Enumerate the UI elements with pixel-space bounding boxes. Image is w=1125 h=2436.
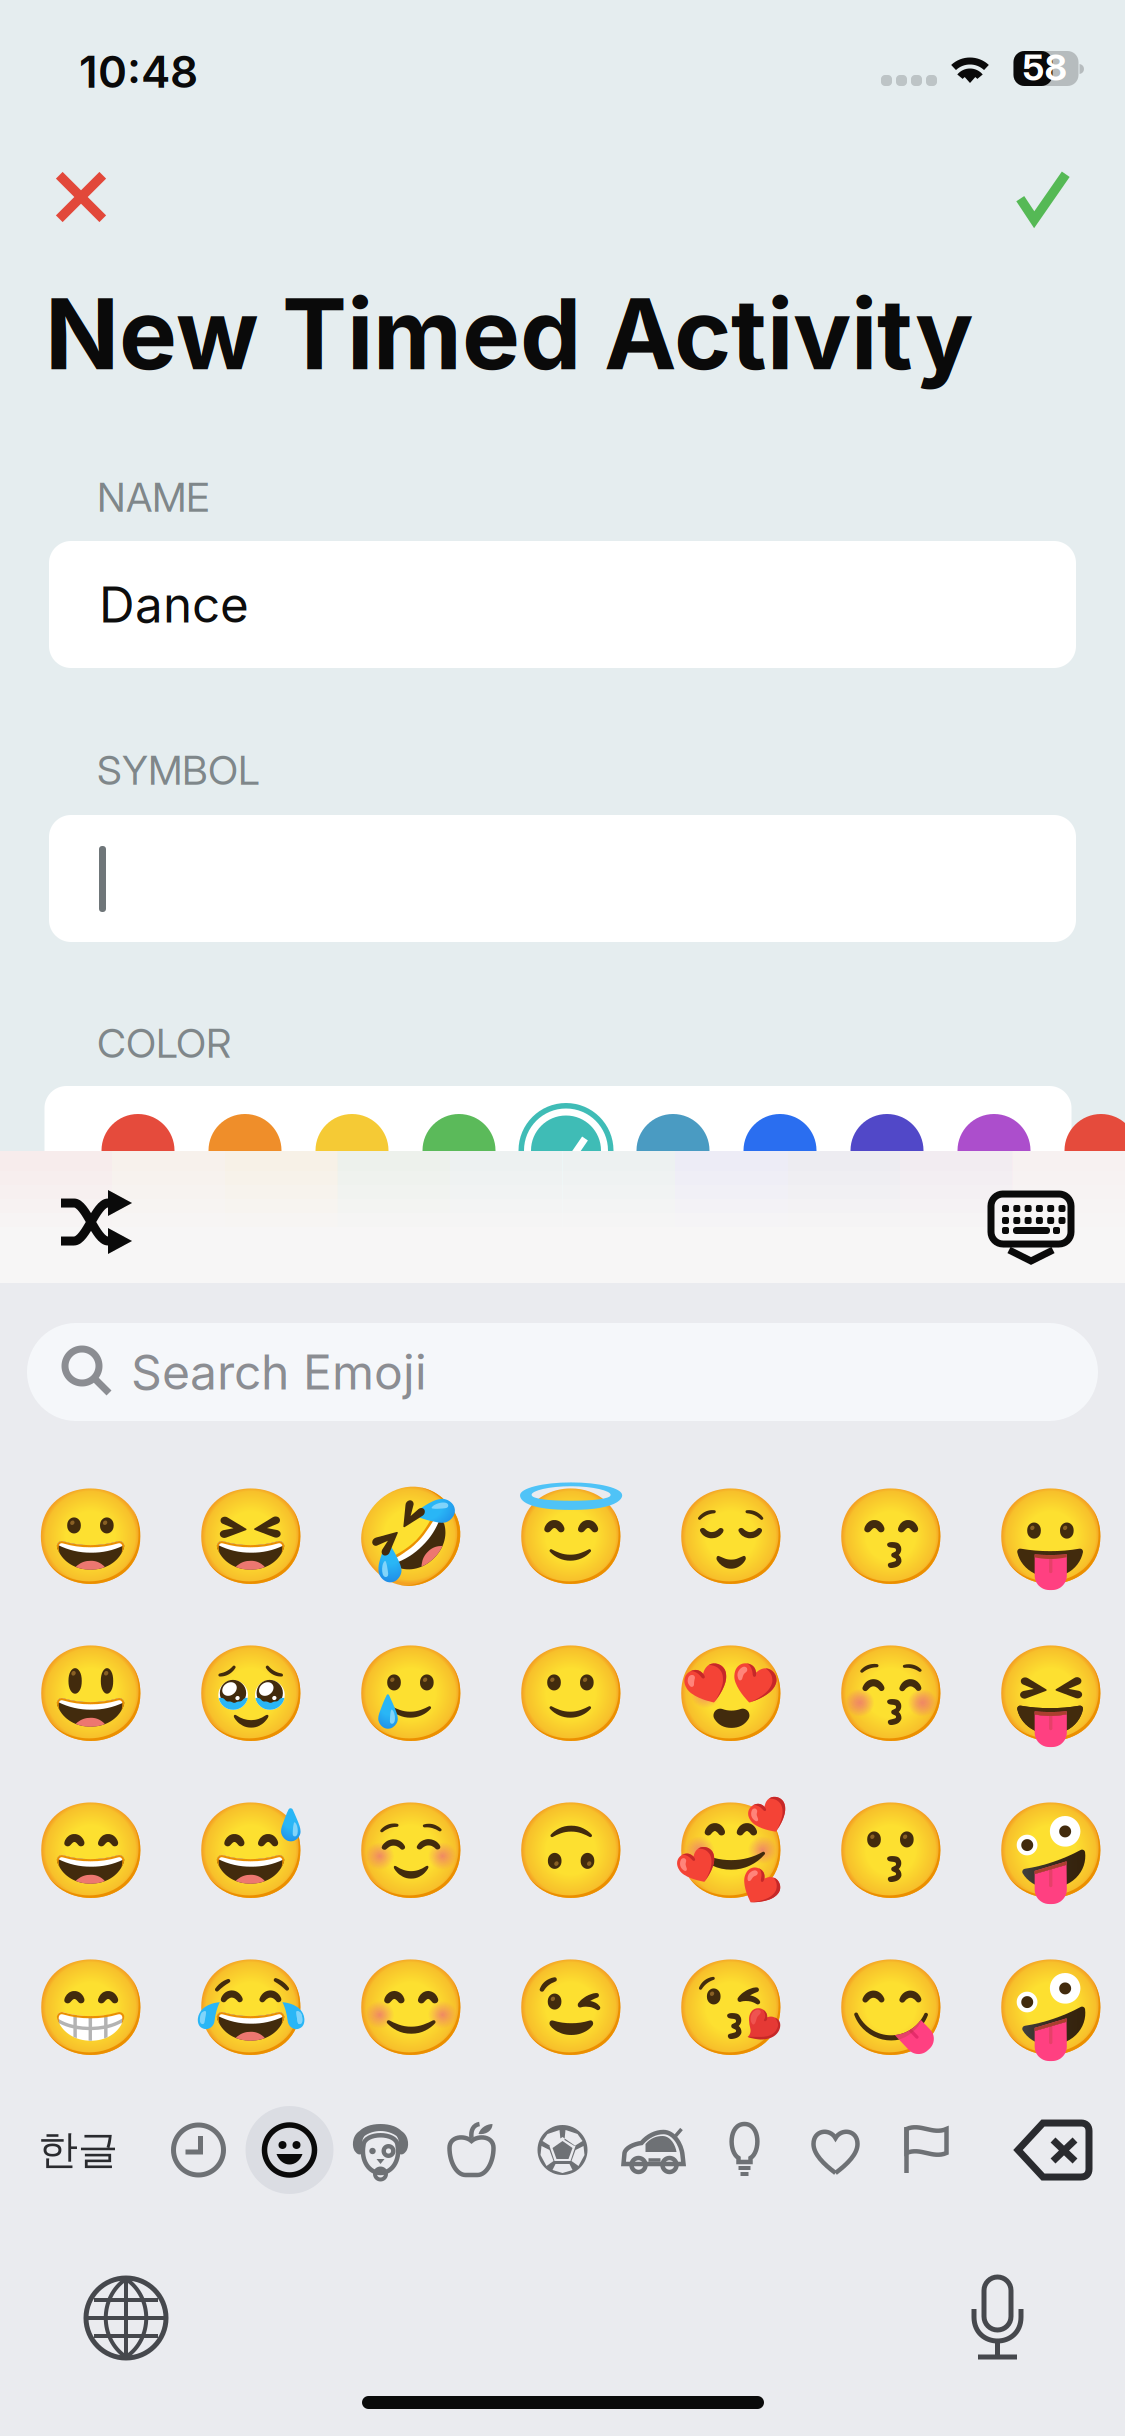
- staticText: 🤪: [993, 1953, 1109, 2063]
- staticText: 😌: [673, 1482, 789, 1592]
- button[interactable]: Smileys and people: [244, 2095, 335, 2205]
- button[interactable]: Dictation: [928, 2248, 1068, 2388]
- button[interactable]: 🥰: [681, 1801, 781, 1901]
- button[interactable]: Indigo: [850, 1114, 923, 1187]
- staticText: 😄: [33, 1796, 149, 1906]
- button[interactable]: 🥹: [201, 1644, 301, 1744]
- button[interactable]: Red: [1064, 1114, 1125, 1187]
- button[interactable]: Red: [101, 1114, 174, 1187]
- staticText: 😋: [833, 1953, 949, 2063]
- button[interactable]: Green: [422, 1114, 495, 1187]
- button[interactable]: Food and drink: [426, 2095, 517, 2205]
- staticText: 🤪: [993, 1796, 1109, 1906]
- button[interactable]: Teal: [529, 1114, 602, 1187]
- button[interactable]: 😗: [841, 1801, 941, 1901]
- staticText: 😀: [33, 1482, 149, 1592]
- staticText: 😗: [833, 1796, 949, 1906]
- button[interactable]: 😊: [361, 1958, 461, 2058]
- button[interactable]: 🤪: [1001, 1958, 1101, 2058]
- staticText: 😇: [513, 1482, 629, 1592]
- button[interactable]: Objects: [699, 2095, 790, 2205]
- button[interactable]: Yellow: [315, 1114, 388, 1187]
- button[interactable]: 😀: [41, 1487, 141, 1587]
- staticText: 😉: [513, 1953, 629, 2063]
- staticText: COLOR: [97, 1019, 231, 1067]
- staticText: SYMBOL: [97, 746, 260, 794]
- button[interactable]: 😇: [521, 1487, 621, 1587]
- button[interactable]: Steel Blue: [636, 1114, 709, 1187]
- button[interactable]: Orange: [208, 1114, 281, 1187]
- button[interactable]: 😉: [521, 1958, 621, 2058]
- button[interactable]: Search Emoji: [27, 1323, 1098, 1421]
- button[interactable]: Recently used: [153, 2095, 244, 2205]
- staticText: 😊: [353, 1953, 469, 2063]
- button[interactable]: 😝: [1001, 1644, 1101, 1744]
- staticText: 🥲: [353, 1639, 469, 1749]
- button[interactable]: 😙: [841, 1487, 941, 1587]
- staticText: 🥰: [673, 1796, 789, 1906]
- button[interactable]: Dismiss Keyboard: [965, 1168, 1097, 1288]
- button[interactable]: 🙂: [521, 1644, 621, 1744]
- button[interactable]: 😋: [841, 1958, 941, 2058]
- button[interactable]: 😆: [201, 1487, 301, 1587]
- button[interactable]: Activity: [517, 2095, 608, 2205]
- button[interactable]: Next keyboard: [56, 2248, 196, 2388]
- staticText: 😍: [673, 1639, 789, 1749]
- button[interactable]: 😘: [681, 1958, 781, 2058]
- button[interactable]: Symbols: [790, 2095, 881, 2205]
- staticText: 🙂: [513, 1639, 629, 1749]
- staticText: Search Emoji: [131, 1343, 427, 1401]
- staticText: 😁: [33, 1953, 149, 2063]
- staticText: 😆: [193, 1482, 309, 1592]
- staticText: NAME: [97, 473, 209, 521]
- button[interactable]: 🤪: [1001, 1801, 1101, 1901]
- button[interactable]: 😚: [841, 1644, 941, 1744]
- button[interactable]: 😌: [681, 1487, 781, 1587]
- staticText: 🥹: [193, 1639, 309, 1749]
- button[interactable]: Animals and nature: [335, 2095, 426, 2205]
- button[interactable]: Purple: [957, 1114, 1030, 1187]
- staticText: 😂: [193, 1953, 309, 2063]
- staticText: Dance: [99, 575, 249, 634]
- button[interactable]: Save: [988, 142, 1098, 252]
- staticText: 😝: [993, 1639, 1109, 1749]
- staticText: 😃: [33, 1639, 149, 1749]
- button[interactable]: 🥲: [361, 1644, 461, 1744]
- button[interactable]: 한글: [0, 2095, 153, 2205]
- staticText: 🙃: [513, 1796, 629, 1906]
- button[interactable]: 😅: [201, 1801, 301, 1901]
- staticText: 😚: [833, 1639, 949, 1749]
- button[interactable]: Delete: [988, 2095, 1118, 2205]
- button[interactable]: 🤣: [361, 1487, 461, 1587]
- button[interactable]: 😛: [1001, 1487, 1101, 1587]
- button[interactable]: 😍: [681, 1644, 781, 1744]
- button[interactable]: 😂: [201, 1958, 301, 2058]
- button[interactable]: 😁: [41, 1958, 141, 2058]
- button[interactable]: 😄: [41, 1801, 141, 1901]
- button[interactable]: 🙃: [521, 1801, 621, 1901]
- button[interactable]: Shuffle: [28, 1162, 160, 1282]
- button[interactable]: Blue: [743, 1114, 816, 1187]
- button[interactable]: Cancel: [26, 142, 136, 252]
- staticText: ☺️: [353, 1796, 469, 1906]
- staticText: 🤣: [353, 1482, 469, 1592]
- button[interactable]: Travel and places: [608, 2095, 699, 2205]
- button[interactable]: 😃: [41, 1644, 141, 1744]
- button[interactable]: ☺️: [361, 1801, 461, 1901]
- staticText: 한글: [38, 2125, 118, 2175]
- staticText: 58: [1022, 46, 1066, 89]
- staticText: 😘: [673, 1953, 789, 2063]
- staticText: 😅: [193, 1796, 309, 1906]
- staticText: New Timed Activity: [45, 275, 974, 393]
- staticText: 😛: [993, 1482, 1109, 1592]
- staticText: 10:48: [79, 45, 198, 98]
- staticText: 😙: [833, 1482, 949, 1592]
- button[interactable]: Flags: [881, 2095, 972, 2205]
